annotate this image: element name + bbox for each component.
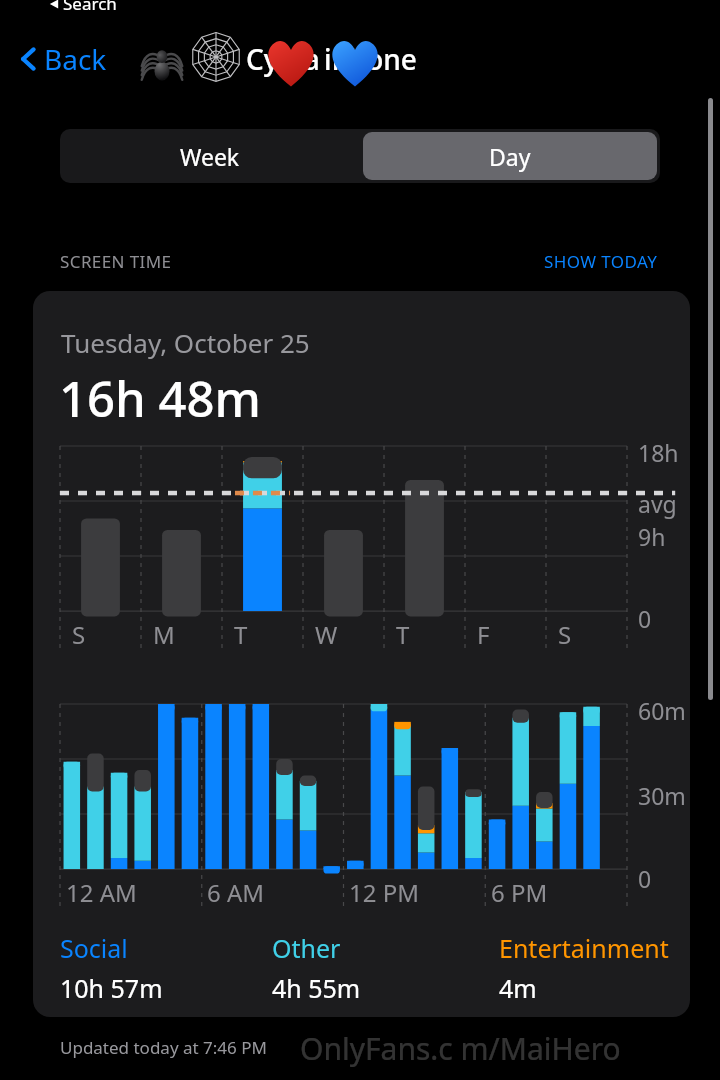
button[interactable]: SHOW TODAY bbox=[542, 248, 660, 275]
staticText: Week bbox=[180, 141, 240, 172]
staticText: 4m bbox=[499, 971, 537, 1005]
staticText: Social bbox=[60, 931, 128, 965]
staticText: Entertainment bbox=[499, 931, 669, 965]
staticText: 12 AM bbox=[66, 876, 137, 909]
button[interactable]: Week bbox=[60, 129, 360, 183]
staticText: SHOW TODAY bbox=[544, 250, 658, 273]
staticText: 6 AM bbox=[207, 876, 265, 909]
staticText: Other bbox=[272, 931, 341, 965]
staticText: T bbox=[396, 618, 410, 651]
staticText: 6 PM bbox=[491, 876, 548, 909]
staticText: iPhone bbox=[324, 40, 417, 78]
staticText: 30m bbox=[638, 780, 686, 811]
staticText: OnlyFans.c m/MaiHero bbox=[300, 1028, 621, 1069]
staticText: 0 bbox=[638, 603, 652, 634]
staticText: n a bbox=[279, 40, 320, 78]
staticText: 60m bbox=[638, 695, 686, 726]
staticText: avg bbox=[638, 488, 677, 519]
staticText: Back bbox=[44, 40, 107, 78]
staticText: W bbox=[315, 618, 338, 651]
staticText: Updated today at 7:46 PM bbox=[60, 1036, 267, 1059]
button[interactable]: Other bbox=[272, 931, 499, 1005]
staticText: Cy bbox=[246, 40, 279, 78]
staticText: 10h 57m bbox=[60, 971, 163, 1005]
button[interactable]: Day bbox=[363, 132, 657, 180]
staticText: 4h 55m bbox=[272, 971, 361, 1005]
button[interactable]: Entertainment bbox=[499, 931, 690, 1005]
staticText: F bbox=[477, 618, 490, 651]
staticText: 9h bbox=[638, 521, 666, 552]
staticText: Tuesday, October 25 bbox=[61, 325, 310, 360]
button[interactable]: Social bbox=[60, 931, 272, 1005]
staticText: S bbox=[72, 618, 86, 651]
button[interactable]: Tuesday, October 25 bbox=[33, 291, 690, 1017]
button[interactable]: Back bbox=[14, 34, 113, 84]
staticText: S bbox=[558, 618, 572, 651]
staticText: M bbox=[153, 618, 175, 651]
staticText: 0 bbox=[638, 863, 652, 894]
staticText: Day bbox=[489, 141, 531, 172]
staticText: 16h 48m bbox=[59, 365, 261, 432]
staticText: Search bbox=[63, 0, 117, 15]
staticText: 12 PM bbox=[349, 876, 419, 909]
staticText: T bbox=[234, 618, 248, 651]
staticText: SCREEN TIME bbox=[60, 250, 172, 273]
button[interactable]: Search bbox=[46, 0, 119, 15]
staticText: 18h bbox=[638, 437, 679, 468]
